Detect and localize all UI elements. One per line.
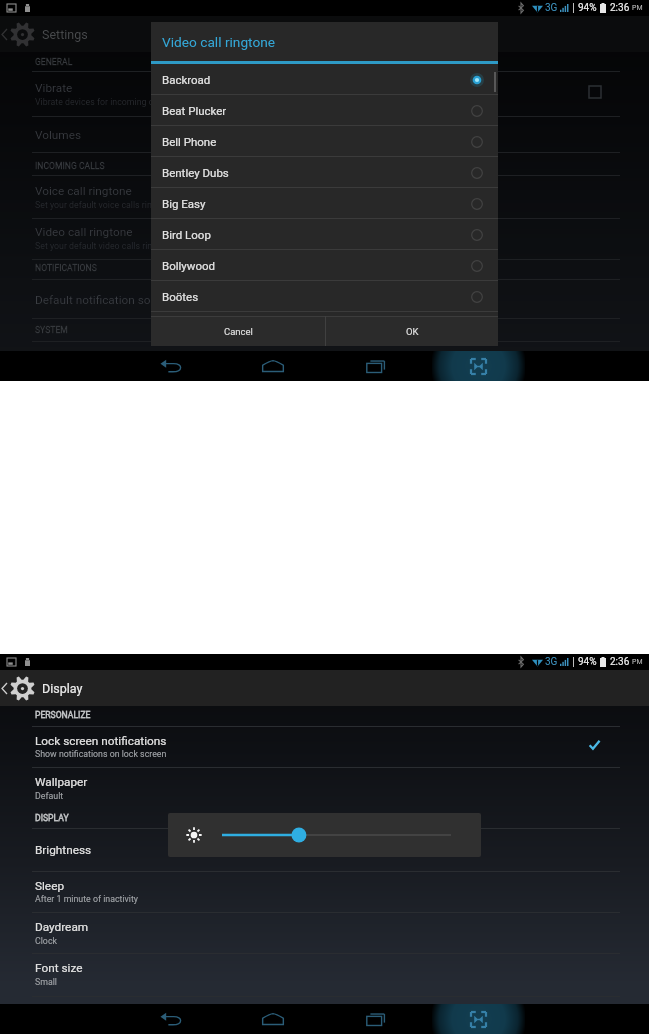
staticText: Big Easy [162, 197, 206, 210]
staticText: Font size [35, 961, 83, 975]
staticText: Backroad [162, 73, 211, 86]
button[interactable]: Settings [0, 22, 96, 47]
button[interactable]: Home [231, 351, 315, 381]
staticText: Bollywood [162, 259, 216, 272]
staticText: Sleep [35, 879, 65, 893]
button[interactable]: Bentley Dubs [151, 157, 498, 188]
staticText: PM [632, 658, 643, 666]
staticText: Set your default video calls rin [35, 241, 153, 251]
staticText: 94% [578, 2, 597, 14]
staticText: NOTIFICATIONS [35, 263, 97, 273]
staticText: Vibrate devices for incoming c [35, 97, 154, 107]
staticText: OK [406, 326, 419, 337]
button[interactable]: Cancel [151, 316, 325, 346]
button[interactable]: Recent apps [334, 1004, 418, 1034]
staticText: Video call ringtone [162, 34, 276, 50]
button[interactable]: Back [129, 1004, 213, 1034]
button[interactable]: Display [0, 676, 91, 701]
button[interactable]: Boötes [151, 281, 498, 312]
button[interactable]: Recent apps [334, 351, 418, 381]
staticText: Bell Phone [162, 135, 217, 148]
staticText: Beat Plucker [162, 104, 227, 117]
staticText: Clock [35, 936, 57, 946]
staticText: SYSTEM [35, 325, 68, 335]
staticText: Default notification sou [35, 293, 157, 307]
staticText: Vibrate [35, 81, 73, 95]
staticText: Cancel [224, 326, 253, 337]
staticText: Settings [42, 27, 88, 42]
staticText: PERSONALIZE [35, 710, 91, 720]
staticText: Display [42, 681, 83, 696]
button[interactable]: Screenshot [432, 1004, 525, 1034]
button[interactable]: Screenshot [432, 351, 525, 381]
staticText: DISPLAY [35, 813, 69, 823]
button[interactable]: Lock screen notifications enabled [582, 733, 606, 757]
staticText: Wallpaper [35, 775, 88, 789]
staticText: Volumes [35, 128, 82, 142]
staticText: Video call ringtone [35, 225, 133, 239]
staticText: Boötes [162, 290, 199, 303]
button[interactable]: Bird Loop [151, 219, 498, 250]
staticText: Bird Loop [162, 228, 211, 241]
button[interactable]: Vibrate toggle [583, 80, 607, 104]
staticText: 3G [545, 2, 558, 14]
button[interactable]: Home [231, 1004, 315, 1034]
staticText: PM [632, 4, 643, 12]
staticText: Default [35, 791, 64, 801]
button[interactable]: Bollywood [151, 250, 498, 281]
button[interactable]: Back [129, 351, 213, 381]
button[interactable]: Big Easy [151, 188, 498, 219]
staticText: GENERAL [35, 57, 73, 67]
staticText: 3G [545, 656, 558, 668]
button[interactable]: Backroad [151, 64, 498, 95]
staticText: Brightness [35, 843, 92, 857]
staticText: INCOMING CALLS [35, 161, 105, 171]
staticText: Show notifications on lock screen [35, 749, 167, 759]
staticText: Lock screen notifications [35, 734, 167, 748]
button[interactable]: Bell Phone [151, 126, 498, 157]
staticText: After 1 minute of inactivity [35, 894, 139, 904]
staticText: 94% [578, 656, 597, 668]
staticText: Voice call ringtone [35, 184, 132, 198]
staticText: Small [35, 977, 58, 987]
button[interactable]: Beat Plucker [151, 95, 498, 126]
staticText: 2:36 [610, 656, 630, 668]
button[interactable]: OK [326, 316, 498, 346]
staticText: 2:36 [610, 2, 630, 14]
staticText: Daydream [35, 920, 89, 934]
staticText: Set your default voice calls rin [35, 200, 152, 210]
staticText: Bentley Dubs [162, 166, 229, 179]
